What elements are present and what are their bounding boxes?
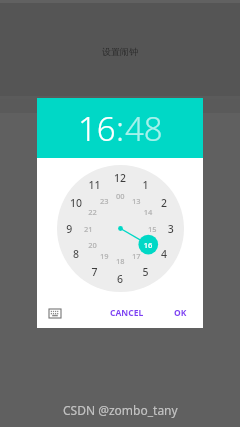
button[interactable]: OK [171,307,190,319]
button[interactable]: 设置闹钟 [102,46,138,57]
staticText: OK [174,307,187,319]
button[interactable]: CANCEL [107,307,147,319]
staticText: : [116,106,125,151]
button[interactable]: Hour selector clock [57,165,184,292]
staticText: CSDN @zombo_tany [63,402,178,418]
staticText: 48 [125,106,163,151]
button[interactable]: 48 [125,106,163,151]
button[interactable]: 16 [78,106,116,151]
staticText: 16 [78,106,116,151]
staticText: CANCEL [110,307,144,319]
button[interactable]: Switch to text input [46,305,63,322]
staticText: 设置闹钟 [102,46,138,57]
